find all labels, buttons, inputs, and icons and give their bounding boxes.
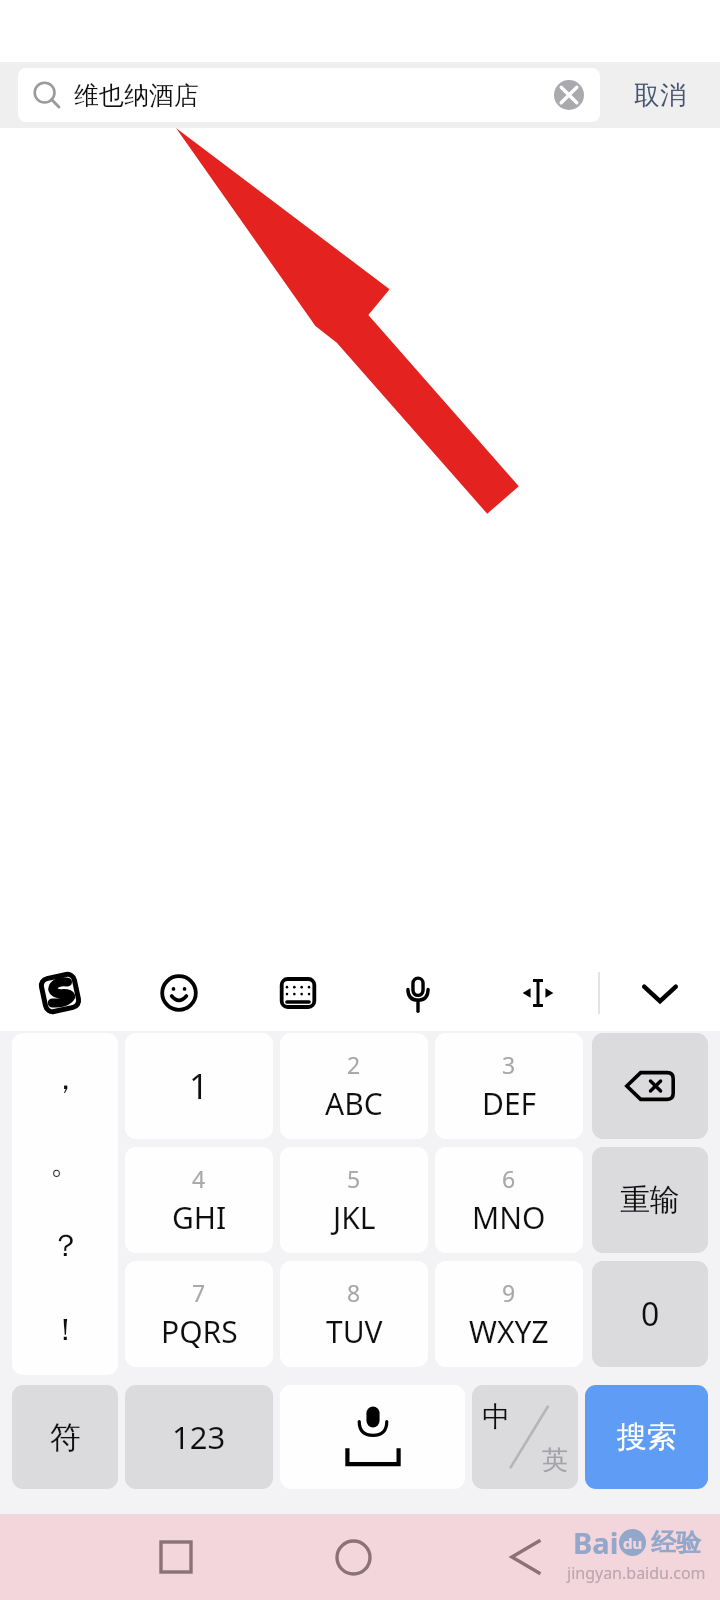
staticText: 5 [347, 1163, 361, 1194]
button[interactable]: Hide keyboard [600, 955, 720, 1031]
staticText: ， [50, 1059, 81, 1098]
button[interactable]: 123 [125, 1385, 273, 1489]
button[interactable]: 符 [12, 1385, 118, 1489]
button[interactable]: Voice input [358, 955, 478, 1031]
staticText: ！ [50, 1310, 81, 1349]
staticText: 1 [189, 1063, 209, 1109]
staticText: du [623, 1533, 643, 1553]
button[interactable]: Move cursor [478, 955, 598, 1031]
button[interactable]: Space and voice input [280, 1385, 465, 1489]
staticText: 123 [172, 1416, 226, 1458]
staticText: jingyan.baidu.com [567, 1562, 706, 1584]
staticText: 9 [502, 1277, 516, 1308]
staticText: ABC [325, 1083, 383, 1124]
staticText: MNO [472, 1197, 546, 1238]
button[interactable]: Clear text [552, 78, 586, 112]
button[interactable]: Back [503, 1514, 551, 1600]
button[interactable]: Keyboard layout [238, 955, 358, 1031]
button[interactable]: 1 [125, 1033, 273, 1139]
staticText: 7 [192, 1277, 206, 1308]
button[interactable]: Backspace [592, 1033, 708, 1139]
staticText: 取消 [634, 79, 686, 112]
staticText: JKL [333, 1197, 376, 1238]
button[interactable]: 搜索 [585, 1385, 708, 1489]
button[interactable]: Recents [152, 1514, 200, 1600]
staticText: 重输 [620, 1181, 680, 1219]
button[interactable]: 8 [280, 1261, 428, 1367]
button[interactable]: 2 [280, 1033, 428, 1139]
staticText: 中 [482, 1399, 510, 1434]
staticText: 。 [50, 1143, 81, 1182]
staticText: WXYZ [469, 1311, 549, 1352]
staticText: GHI [172, 1197, 227, 1238]
button[interactable]: 5 [280, 1147, 428, 1253]
staticText: 经验 [651, 1527, 701, 1558]
staticText: 0 [641, 1292, 660, 1336]
button[interactable]: 3 [435, 1033, 583, 1139]
staticText: Bai [573, 1523, 619, 1562]
button[interactable]: 4 [125, 1147, 273, 1253]
staticText: 符 [50, 1418, 81, 1457]
button[interactable]: 0 [592, 1261, 708, 1367]
button[interactable]: 9 [435, 1261, 583, 1367]
button[interactable]: 取消 [600, 62, 720, 128]
staticText: PQRS [161, 1311, 238, 1352]
staticText: ？ [50, 1226, 81, 1265]
button[interactable]: Home [329, 1514, 377, 1600]
staticText: 3 [502, 1049, 516, 1080]
button[interactable]: Emoji [119, 955, 238, 1031]
button[interactable]: Punctuation keys [12, 1033, 118, 1375]
button[interactable]: 维也纳酒店 [18, 68, 600, 122]
staticText: 维也纳酒店 [74, 80, 199, 111]
staticText: 搜索 [617, 1418, 677, 1456]
button[interactable]: Chinese English toggle [472, 1385, 578, 1489]
staticText: DEF [482, 1083, 537, 1124]
staticText: 6 [502, 1163, 516, 1194]
staticText: 4 [192, 1163, 206, 1194]
button[interactable]: 6 [435, 1147, 583, 1253]
button[interactable]: Sogou input method [0, 955, 119, 1031]
staticText: 2 [347, 1049, 361, 1080]
button[interactable]: 重输 [592, 1147, 708, 1253]
staticText: 8 [347, 1277, 361, 1308]
button[interactable]: 7 [125, 1261, 273, 1367]
staticText: 英 [542, 1444, 568, 1477]
staticText: TUV [326, 1311, 383, 1352]
